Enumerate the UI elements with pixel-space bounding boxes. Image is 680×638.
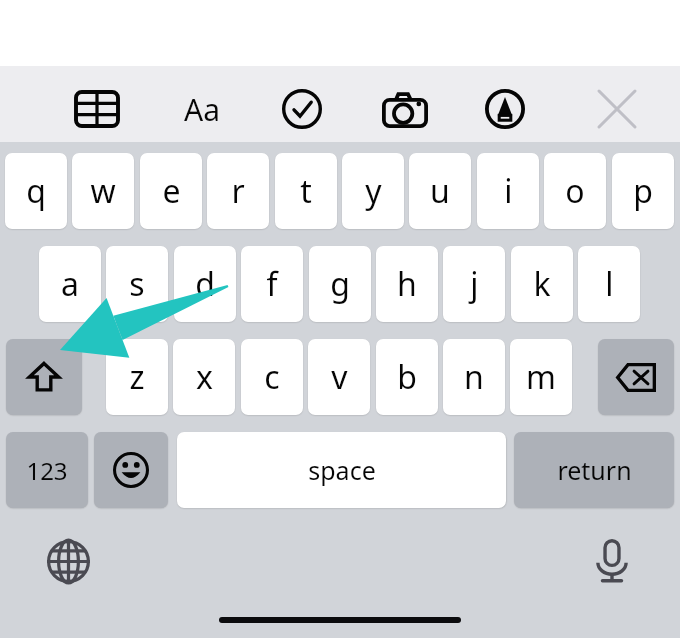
button[interactable]: k: [511, 246, 573, 322]
staticText: a: [61, 262, 79, 306]
button[interactable]: Shift: [6, 339, 82, 415]
button[interactable]: b: [376, 339, 438, 415]
button[interactable]: z: [106, 339, 168, 415]
button[interactable]: space: [177, 432, 506, 508]
button[interactable]: Next keyboard: [30, 530, 106, 592]
button[interactable]: d: [174, 246, 236, 322]
button[interactable]: Dictation: [574, 530, 650, 592]
button[interactable]: i: [477, 153, 539, 229]
button[interactable]: c: [241, 339, 303, 415]
button[interactable]: t: [275, 153, 337, 229]
button[interactable]: u: [409, 153, 471, 229]
button[interactable]: j: [443, 246, 505, 322]
staticText: Aa: [184, 89, 220, 130]
button[interactable]: Table: [72, 84, 122, 134]
button[interactable]: l: [578, 246, 640, 322]
button[interactable]: p: [612, 153, 674, 229]
button[interactable]: g: [309, 246, 371, 322]
button[interactable]: s: [106, 246, 168, 322]
staticText: h: [397, 262, 417, 306]
button[interactable]: Camera: [379, 84, 431, 136]
staticText: b: [397, 355, 417, 399]
staticText: d: [195, 262, 215, 306]
staticText: p: [633, 169, 653, 213]
staticText: y: [365, 169, 382, 213]
staticText: f: [266, 262, 278, 306]
staticText: l: [605, 262, 614, 306]
staticText: g: [330, 262, 350, 306]
staticText: space: [308, 453, 376, 487]
staticText: q: [26, 169, 46, 213]
button[interactable]: return: [514, 432, 674, 508]
staticText: u: [430, 169, 450, 213]
staticText: n: [464, 355, 484, 399]
button[interactable]: w: [72, 153, 134, 229]
button[interactable]: o: [544, 153, 606, 229]
staticText: v: [331, 355, 348, 399]
staticText: w: [90, 169, 116, 213]
staticText: j: [470, 262, 479, 306]
staticText: o: [565, 169, 585, 213]
staticText: s: [129, 262, 145, 306]
button[interactable]: Checklist: [277, 84, 327, 134]
button[interactable]: r: [207, 153, 269, 229]
staticText: m: [526, 355, 556, 399]
button[interactable]: m: [510, 339, 572, 415]
button[interactable]: Markup: [480, 84, 530, 134]
button[interactable]: x: [173, 339, 235, 415]
button[interactable]: Close: [592, 84, 642, 134]
button[interactable]: h: [376, 246, 438, 322]
staticText: return: [557, 453, 632, 487]
button[interactable]: Backspace: [598, 339, 674, 415]
staticText: e: [162, 169, 181, 213]
button[interactable]: f: [241, 246, 303, 322]
staticText: i: [504, 169, 513, 213]
staticText: c: [264, 355, 280, 399]
button[interactable]: Emoji: [94, 432, 168, 508]
staticText: k: [533, 262, 551, 306]
button[interactable]: a: [39, 246, 101, 322]
staticText: t: [300, 169, 312, 213]
button[interactable]: y: [342, 153, 404, 229]
staticText: 123: [26, 454, 68, 487]
staticText: z: [129, 355, 145, 399]
staticText: x: [196, 355, 213, 399]
button[interactable]: n: [443, 339, 505, 415]
button[interactable]: Aa: [172, 84, 232, 134]
button[interactable]: q: [5, 153, 67, 229]
button[interactable]: e: [140, 153, 202, 229]
button[interactable]: 123: [6, 432, 88, 508]
button[interactable]: v: [308, 339, 370, 415]
staticText: r: [231, 169, 245, 213]
